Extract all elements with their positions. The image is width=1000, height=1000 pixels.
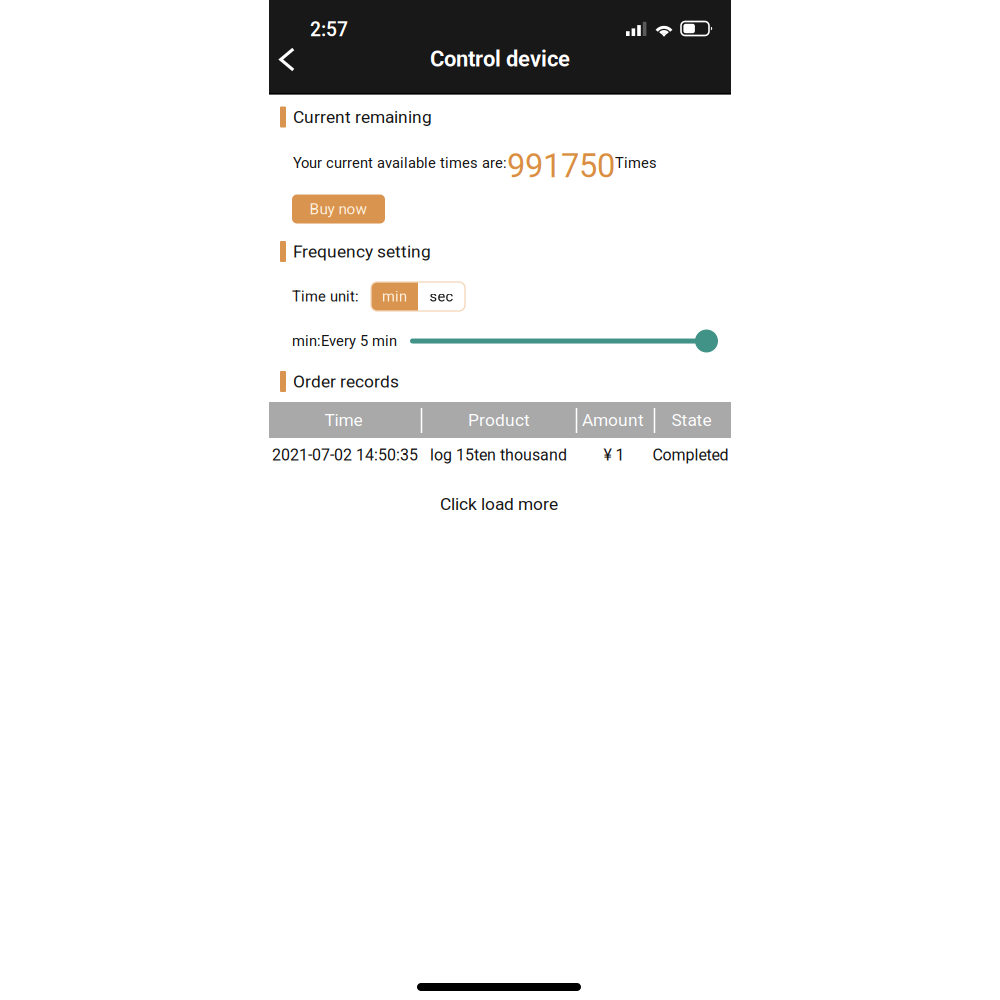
staticText: Time unit: — [292, 288, 359, 305]
staticText: min — [382, 288, 407, 305]
staticText: Order records — [293, 371, 399, 392]
staticText: Amount — [582, 410, 644, 430]
staticText: min:Every 5 min — [292, 332, 397, 350]
staticText: State — [671, 410, 711, 430]
staticText: Completed — [652, 446, 728, 464]
button[interactable]: min — [371, 282, 418, 311]
staticText: Frequency setting — [293, 241, 431, 262]
button[interactable]: sec — [418, 282, 465, 311]
staticText: sec — [429, 288, 453, 305]
staticText: 2:57 — [310, 18, 348, 41]
button[interactable]: Buy now — [292, 194, 385, 223]
staticText: log 15ten thousand — [430, 446, 567, 464]
button[interactable]: Back — [266, 38, 308, 80]
staticText: Click load more — [440, 494, 558, 514]
staticText: Product — [468, 410, 530, 430]
staticText: Your current available times are: — [293, 154, 507, 172]
staticText: Current remaining — [293, 107, 432, 127]
staticText: ¥ 1 — [603, 446, 624, 464]
staticText: Times — [615, 154, 657, 172]
staticText: 991750 — [507, 147, 615, 185]
staticText: Time — [324, 410, 362, 430]
staticText: 2021-07-02 14:50:35 — [272, 446, 418, 464]
button[interactable]: Click load more — [379, 487, 619, 521]
staticText: Buy now — [309, 200, 367, 218]
staticText: Control device — [430, 46, 570, 72]
